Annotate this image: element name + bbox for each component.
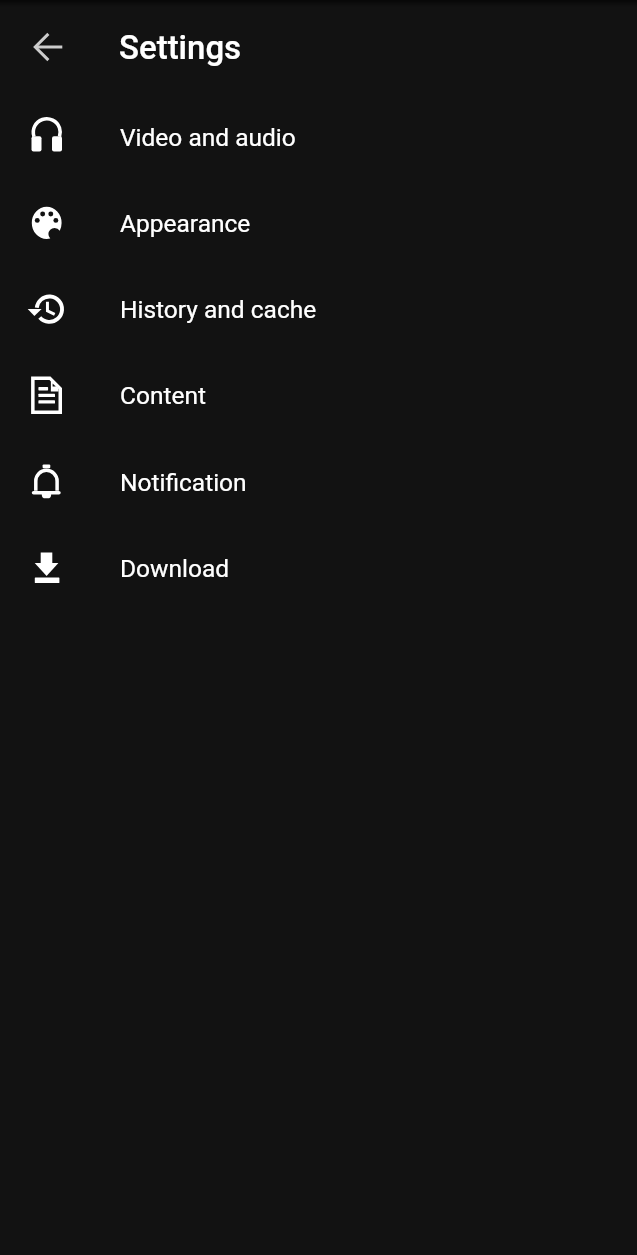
staticText: Appearance — [120, 209, 251, 238]
button[interactable]: Download — [0, 525, 637, 611]
staticText: Download — [120, 554, 230, 583]
staticText: Notification — [120, 468, 247, 497]
staticText: Settings — [119, 28, 242, 67]
staticText: History and cache — [120, 295, 317, 324]
button[interactable]: Appearance — [0, 180, 637, 266]
button[interactable]: History and cache — [0, 266, 637, 352]
button[interactable]: Back — [25, 23, 73, 71]
button[interactable]: Content — [0, 352, 637, 438]
button[interactable]: Video and audio — [0, 94, 637, 180]
staticText: Video and audio — [120, 123, 296, 152]
button[interactable]: Notification — [0, 439, 637, 525]
staticText: Content — [120, 381, 207, 410]
